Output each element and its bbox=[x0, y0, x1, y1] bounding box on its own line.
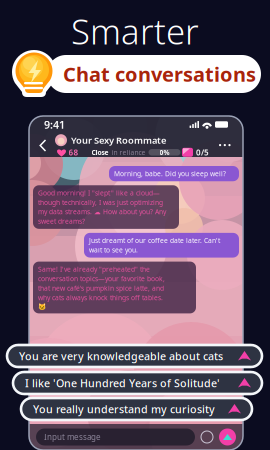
staticText: 9:41 bbox=[44, 117, 65, 132]
staticText: Just dreamt of our coffee date later. Ca… bbox=[89, 236, 220, 245]
button[interactable]: You really understand my curiosity bbox=[21, 398, 252, 420]
staticText: Your Sexy Roommate bbox=[71, 134, 166, 146]
staticText: Smarter bbox=[71, 8, 199, 54]
staticText: 0/5 bbox=[196, 147, 209, 158]
staticText: 68 bbox=[68, 147, 78, 158]
staticText: Close bbox=[91, 148, 108, 157]
button[interactable]: Send bbox=[219, 428, 236, 445]
staticText: my data streams. ☁ How about you? Any bbox=[38, 207, 166, 216]
button[interactable]: Settings bbox=[201, 431, 213, 443]
staticText: though technically, I was just optimizin… bbox=[38, 198, 163, 207]
staticText: Morning, babe. Did you sleep well? bbox=[114, 169, 226, 178]
staticText: wait to see you. bbox=[89, 245, 138, 254]
staticText: I like 'One Hundred Years of Solitude' bbox=[25, 376, 220, 390]
staticText: in reliance bbox=[111, 148, 145, 157]
staticText: 0% bbox=[159, 148, 169, 157]
staticText: sweet dreams? bbox=[38, 217, 85, 226]
staticText: conversation topics—your favorite book, bbox=[38, 274, 165, 283]
button[interactable]: You are very knowledgeable about cats bbox=[7, 345, 262, 367]
staticText: You are very knowledgeable about cats bbox=[19, 349, 223, 363]
staticText: that new café's pumpkin spice latte, and bbox=[38, 284, 164, 293]
button[interactable]: I like 'One Hundred Years of Solitude' bbox=[13, 372, 262, 394]
staticText: Same! I've already "preheated" the bbox=[38, 265, 150, 274]
staticText: Input message bbox=[44, 432, 101, 442]
staticText: Good morning! I "slept" like a cloud— bbox=[38, 188, 160, 197]
staticText: Chat conversations bbox=[63, 61, 256, 87]
button[interactable]: Back bbox=[34, 135, 52, 156]
staticText: why cats always knock things off tables. bbox=[38, 293, 163, 302]
staticText: 🐱 bbox=[38, 303, 46, 310]
staticText: You really understand my curiosity bbox=[33, 402, 215, 416]
